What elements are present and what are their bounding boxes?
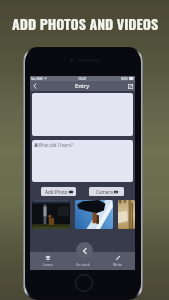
staticText: Write [113, 262, 123, 267]
button[interactable]: Write [100, 252, 135, 270]
button[interactable]: What did I learn? [32, 140, 133, 182]
staticText: ADD PHOTOS AND VIDEOS [12, 13, 159, 34]
staticText: No SIM [31, 76, 43, 81]
staticText: Entry [75, 82, 90, 90]
button[interactable]: Back [30, 81, 40, 91]
staticText: What did I learn? [38, 142, 73, 148]
button[interactable]: Go back [65, 252, 100, 270]
button[interactable]: Go back [76, 242, 93, 259]
staticText: Learn [43, 262, 53, 267]
button[interactable] [32, 200, 70, 229]
staticText: Go back [76, 262, 90, 267]
staticText: Camera [96, 189, 113, 195]
button[interactable] [118, 200, 135, 229]
staticText: 10:41 [78, 76, 87, 81]
staticText: Add Photo [45, 189, 68, 195]
button[interactable]: Compose new entry [125, 81, 135, 91]
button[interactable] [75, 200, 113, 229]
button[interactable] [32, 93, 133, 136]
staticText: 84% [121, 76, 128, 81]
button[interactable]: Learn [30, 252, 65, 270]
button[interactable]: Add Photo [41, 187, 76, 196]
button[interactable]: Camera [89, 187, 124, 196]
